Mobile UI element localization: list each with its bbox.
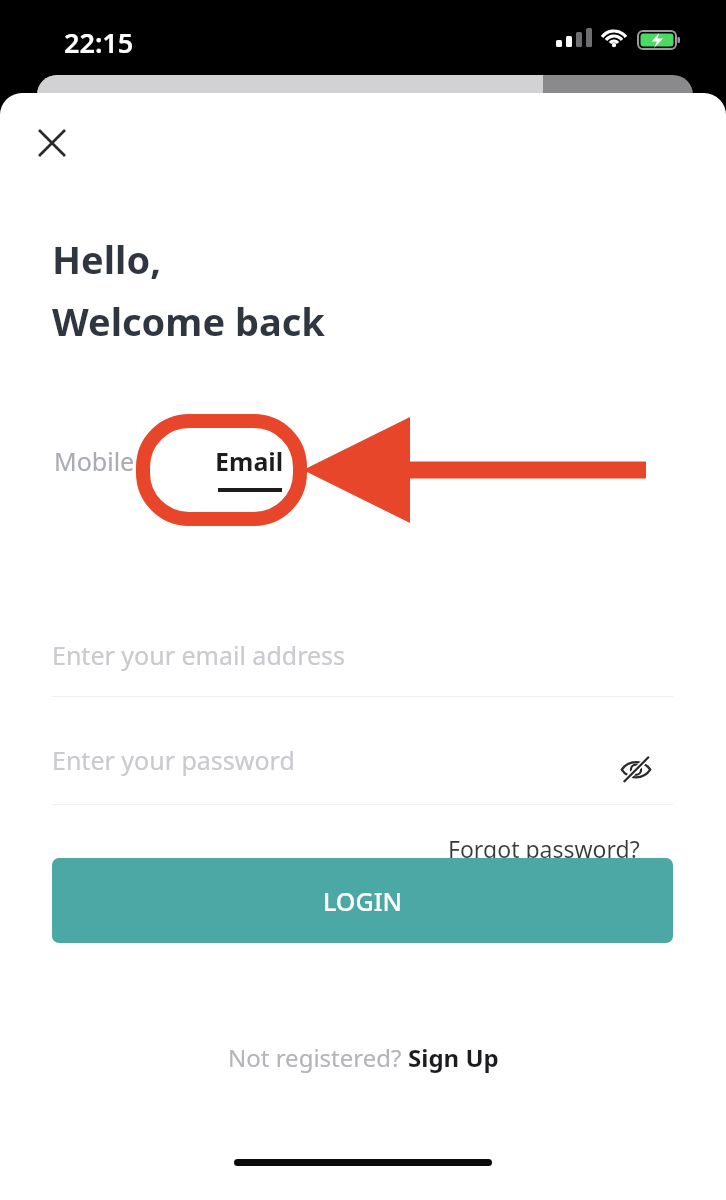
staticText: Mobile (54, 444, 135, 478)
staticText: Email (215, 444, 284, 478)
staticText: LOGIN (323, 884, 402, 918)
staticText: Enter your password (52, 743, 295, 777)
button[interactable]: Close (24, 115, 80, 171)
button[interactable]: Email (211, 438, 288, 498)
button[interactable]: Sign Up (408, 1041, 499, 1074)
button[interactable]: Forgot password? (448, 833, 660, 870)
button[interactable]: Mobile (52, 438, 137, 484)
staticText: Sign Up (408, 1041, 499, 1074)
button[interactable]: Show password (608, 741, 664, 797)
staticText: Hello, (52, 233, 161, 285)
staticText: Enter your email address (52, 638, 346, 672)
staticText: Forgot password? (448, 833, 640, 864)
button[interactable]: LOGIN (52, 858, 673, 943)
staticText: 22:15 (64, 24, 134, 61)
staticText: Not registered? (228, 1041, 408, 1074)
staticText: Welcome back (52, 295, 325, 347)
